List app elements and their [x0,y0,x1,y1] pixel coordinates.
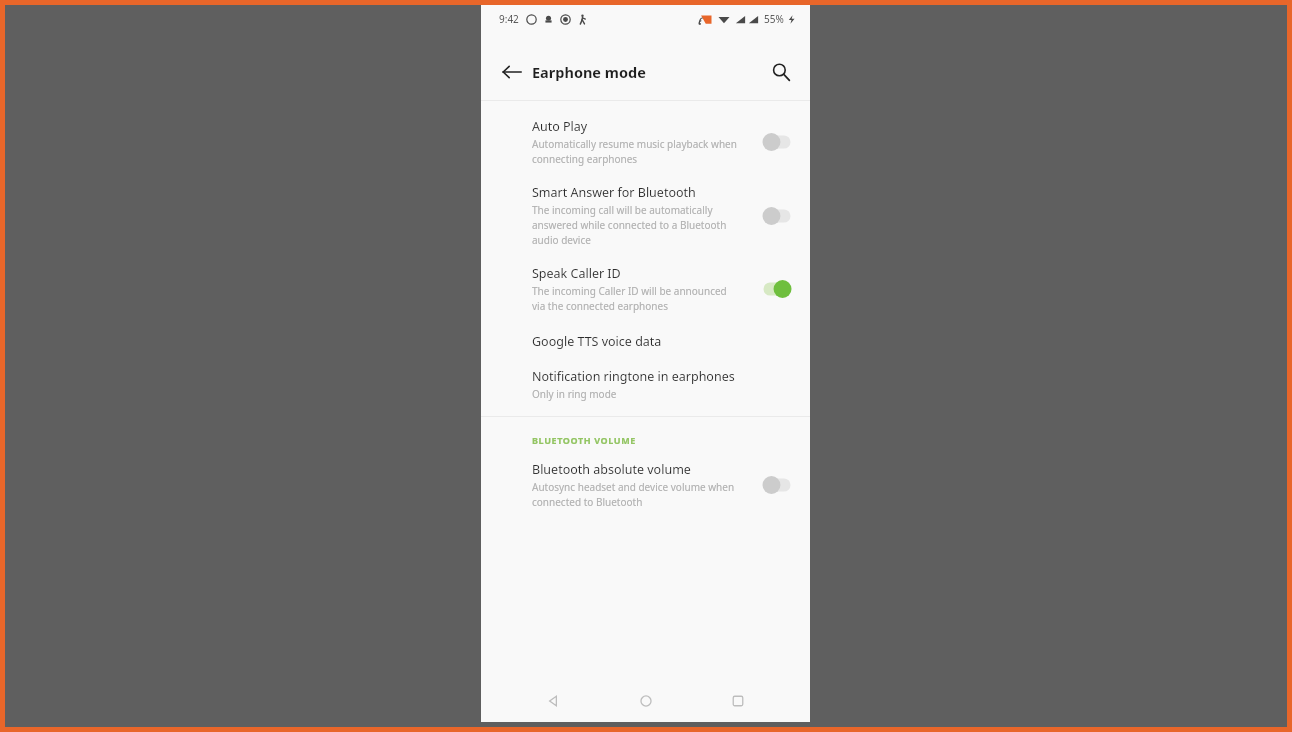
button[interactable]: Notification ringtone in earphones [481,352,810,403]
staticText: Google TTS voice data [532,333,662,350]
staticText: Speak Caller ID [532,265,621,282]
staticText: Autosync headset and device volume when … [532,480,740,509]
button[interactable]: Off [760,472,794,498]
staticText: Smart Answer for Bluetooth [532,184,696,201]
staticText: Auto Play [532,118,588,135]
staticText: Earphone mode [532,62,646,82]
staticText: Automatically resume music playback when… [532,137,740,166]
staticText: Bluetooth absolute volume [532,461,691,478]
button[interactable]: On [760,276,794,302]
button[interactable]: Recents [718,681,758,721]
button[interactable]: Back [533,681,573,721]
button[interactable]: Off [760,203,794,229]
button[interactable]: Off [760,129,794,155]
staticText: Notification ringtone in earphones [532,368,735,385]
button[interactable]: Home [626,681,666,721]
button[interactable]: Auto Play [481,110,810,168]
staticText: Only in ring mode [532,387,740,401]
button[interactable]: Google TTS voice data [481,315,810,352]
button[interactable]: Back [491,51,533,93]
button[interactable]: Bluetooth absolute volume [481,446,810,511]
staticText: 55% [764,12,784,26]
staticText: The incoming call will be automatically … [532,203,740,247]
button[interactable]: Speak Caller ID [481,249,810,315]
staticText: 9:42 [499,12,519,26]
staticText: The incoming Caller ID will be announced… [532,284,740,313]
staticText: BLUETOOTH VOLUME [532,434,636,446]
button[interactable]: Smart Answer for Bluetooth [481,168,810,249]
button[interactable]: Search [760,51,802,93]
